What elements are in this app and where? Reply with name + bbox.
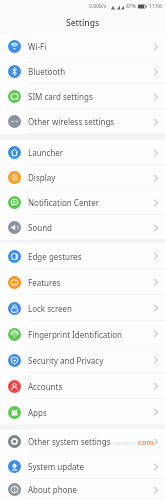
button[interactable]: Apps bbox=[0, 399, 165, 425]
staticText: Bluetooth bbox=[28, 66, 66, 77]
staticText: Settings bbox=[66, 17, 100, 29]
staticText: 0.00b/s bbox=[89, 3, 107, 10]
button[interactable]: Lock screen bbox=[0, 295, 165, 321]
staticText: Launcher bbox=[28, 147, 64, 158]
button[interactable]: About phone bbox=[0, 479, 165, 500]
button[interactable]: Other system settings bbox=[0, 429, 165, 454]
button[interactable]: Other wireless settings bbox=[0, 109, 165, 134]
staticText: Security and Privacy bbox=[28, 355, 104, 366]
staticText: Other wireless settings bbox=[28, 116, 115, 127]
staticText: Features bbox=[28, 277, 61, 288]
staticText: Notification Center bbox=[28, 197, 100, 208]
staticText: Other system settings bbox=[28, 436, 111, 447]
staticText: Display bbox=[28, 172, 56, 183]
button[interactable]: Edge gestures bbox=[0, 243, 165, 269]
staticText: Accounts bbox=[28, 381, 63, 392]
staticText: System update bbox=[28, 461, 84, 472]
button[interactable]: Wi-Fi bbox=[0, 34, 165, 59]
button[interactable]: Display bbox=[0, 165, 165, 190]
staticText: Edge gestures bbox=[28, 251, 82, 262]
staticText: Fingerprint Identification bbox=[28, 329, 123, 340]
staticText: About phone bbox=[28, 484, 77, 495]
staticText: 11:56 bbox=[149, 3, 162, 10]
button[interactable]: Accounts bbox=[0, 373, 165, 399]
button[interactable]: Fingerprint Identification bbox=[0, 321, 165, 347]
button[interactable]: Bluetooth bbox=[0, 59, 165, 84]
staticText: 87% bbox=[126, 3, 136, 10]
staticText: Apps bbox=[28, 407, 47, 418]
staticText: Lock screen bbox=[28, 303, 73, 314]
button[interactable]: Security and Privacy bbox=[0, 347, 165, 373]
button[interactable]: SIM card settings bbox=[0, 84, 165, 109]
staticText: SIM card settings bbox=[28, 91, 93, 102]
staticText: www.needrom bbox=[100, 439, 138, 446]
button[interactable]: Features bbox=[0, 269, 165, 295]
button[interactable]: System update bbox=[0, 454, 165, 479]
staticText: Wi-Fi bbox=[28, 41, 47, 52]
staticText: Sound bbox=[28, 222, 53, 233]
staticText: com bbox=[138, 437, 154, 447]
button[interactable]: Sound bbox=[0, 215, 165, 240]
button[interactable]: Launcher bbox=[0, 140, 165, 165]
button[interactable]: Notification Center bbox=[0, 190, 165, 215]
